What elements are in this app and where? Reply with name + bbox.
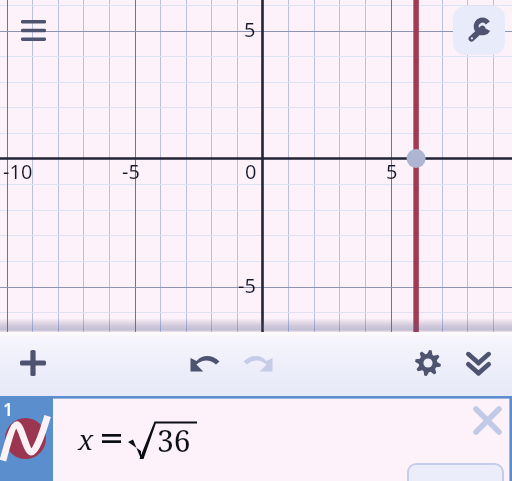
staticText: 0 [245, 158, 257, 185]
staticText: 1 [3, 397, 14, 422]
staticText: -10 [3, 158, 33, 185]
staticText: -5 [122, 158, 140, 185]
button[interactable]: Graph settings [453, 6, 505, 55]
button[interactable]: Result x = 6 [407, 463, 504, 481]
button[interactable]: Undo [181, 339, 229, 387]
button[interactable]: Settings [404, 339, 452, 387]
staticText: 5 [386, 158, 398, 185]
button[interactable]: Collapse keypad [454, 339, 502, 387]
button[interactable]: Open menu [9, 6, 57, 54]
staticText: 36 [157, 420, 191, 461]
button[interactable]: Expression 1 colour [0, 396, 53, 481]
staticText: -5 [238, 272, 256, 299]
button[interactable]: Add expression [9, 339, 57, 387]
staticText: 5 [244, 16, 256, 43]
staticText: x [78, 420, 94, 458]
button[interactable]: Delete expression [466, 399, 508, 441]
button[interactable]: Redo [234, 339, 282, 387]
